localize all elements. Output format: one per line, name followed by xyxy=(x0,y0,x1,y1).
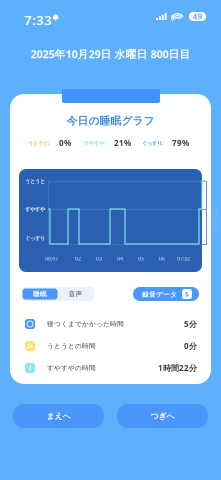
staticText: 5 xyxy=(185,290,189,298)
staticText: Z xyxy=(28,364,31,372)
staticText: すやすや: xyxy=(84,139,105,147)
staticText: 04 xyxy=(117,255,123,262)
staticText: まえへ xyxy=(46,411,70,421)
button[interactable]: Zz xyxy=(25,340,197,352)
staticText: ぐっすり xyxy=(25,235,45,242)
button[interactable]: まえへ xyxy=(13,404,104,428)
button[interactable]: 睡眠 xyxy=(22,288,57,299)
button[interactable]: つぎへ xyxy=(117,404,208,428)
staticText: 2025年10月29日 水曜日 800日目 xyxy=(30,47,190,61)
staticText: 5分 xyxy=(184,319,197,329)
staticText: 06 xyxy=(159,255,165,262)
staticText: 03 xyxy=(96,255,102,262)
staticText: 0% xyxy=(59,138,71,148)
staticText: Zz xyxy=(27,342,33,350)
staticText: 録音データ xyxy=(142,290,177,299)
button[interactable]: 寝つくまでかかった時間 xyxy=(25,318,197,330)
staticText: 1時間22分 xyxy=(158,363,197,373)
staticText: 音声 xyxy=(68,290,82,298)
staticText: 49 xyxy=(192,11,202,22)
staticText: すやすや xyxy=(25,206,45,213)
staticText: うとうとの時間 xyxy=(47,342,96,350)
staticText: 00:47 xyxy=(45,255,58,262)
staticText: 睡眠 xyxy=(33,290,47,298)
staticText: 寝つくまでかかった時間 xyxy=(47,320,124,328)
staticText: すやすやの時間 xyxy=(47,364,96,372)
button[interactable]: 録音データ xyxy=(133,287,199,301)
staticText: 05 xyxy=(138,255,144,262)
staticText: 今日の睡眠グラフ xyxy=(66,114,154,127)
staticText: 21% xyxy=(114,138,131,148)
staticText: つぎへ xyxy=(150,411,174,421)
button[interactable]: 音声 xyxy=(58,288,93,299)
staticText: うとうと xyxy=(25,178,45,185)
staticText: ぐっすり: xyxy=(142,139,163,147)
staticText: 79% xyxy=(172,138,189,148)
staticText: 0分 xyxy=(184,341,197,351)
staticText: 02 xyxy=(75,255,81,262)
staticText: 07:32 xyxy=(177,255,190,262)
button[interactable]: Z xyxy=(25,362,197,374)
staticText: 7:33 xyxy=(24,11,52,29)
staticText: うとうと: xyxy=(28,139,49,147)
